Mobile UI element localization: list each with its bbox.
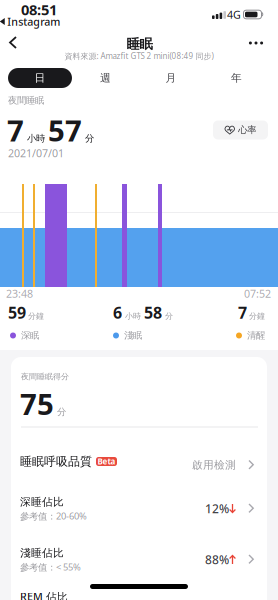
staticText: 分鐘	[28, 311, 44, 321]
staticText: 59	[8, 302, 26, 323]
staticText: 分鐘	[249, 311, 265, 321]
button[interactable]: 週	[75, 68, 135, 88]
button[interactable]: Instagram	[0, 14, 60, 29]
staticText: 88%	[205, 551, 229, 567]
staticText: Instagram	[7, 14, 60, 29]
staticText: 12%	[205, 500, 229, 516]
button[interactable]: 心率	[213, 120, 268, 139]
staticText: 資料來源: Amazfit GTS 2 mini(08:49 同步)	[64, 51, 213, 61]
staticText: 23:48	[6, 286, 33, 301]
staticText: 清醒	[247, 330, 265, 341]
button[interactable]	[9, 36, 19, 50]
staticText: 6	[113, 302, 122, 323]
button[interactable]	[249, 41, 263, 44]
staticText: 小時	[27, 132, 45, 144]
button[interactable]: 日	[8, 68, 72, 88]
staticText: 參考值：< 55%	[20, 561, 81, 573]
staticText: 深眠	[21, 330, 39, 341]
button[interactable]: 淺睡佔比	[11, 536, 267, 580]
staticText: 睡眠	[126, 36, 152, 52]
staticText: 分	[85, 132, 94, 144]
staticText: 睡眠呼吸品質	[20, 454, 92, 469]
button[interactable]: 睡眠呼吸品質	[11, 446, 267, 480]
staticText: 週	[100, 71, 111, 84]
staticText: 參考值：20-60%	[20, 510, 87, 522]
staticText: 啟用檢測	[192, 458, 236, 471]
staticText: 75	[20, 384, 54, 423]
button[interactable]: 月	[141, 68, 201, 88]
button[interactable]: 深睡佔比	[11, 485, 267, 529]
staticText: 夜間睡眠得分	[21, 372, 69, 381]
staticText: 日	[34, 71, 45, 84]
staticText: 07:52	[244, 286, 271, 301]
staticText: 小時	[125, 311, 141, 321]
staticText: 月	[165, 71, 176, 84]
staticText: Beta	[97, 456, 115, 467]
staticText: 2021/07/01	[8, 146, 64, 160]
staticText: 淺睡佔比	[20, 546, 64, 559]
staticText: 58	[144, 302, 162, 323]
staticText: 深睡佔比	[20, 495, 64, 508]
staticText: REM 佔比	[20, 589, 68, 600]
staticText: 57	[48, 110, 82, 149]
staticText: 分	[165, 311, 173, 321]
staticText: 年	[231, 71, 242, 84]
button[interactable]: 年	[206, 68, 266, 88]
staticText: 夜間睡眠	[8, 95, 44, 106]
staticText: 7	[7, 110, 24, 149]
staticText: 4G	[227, 7, 241, 22]
staticText: 08:51	[21, 0, 57, 19]
staticText: 心率	[238, 124, 256, 136]
staticText: 7	[238, 302, 247, 323]
staticText: 分	[57, 406, 66, 417]
staticText: 淺眠	[124, 330, 142, 341]
